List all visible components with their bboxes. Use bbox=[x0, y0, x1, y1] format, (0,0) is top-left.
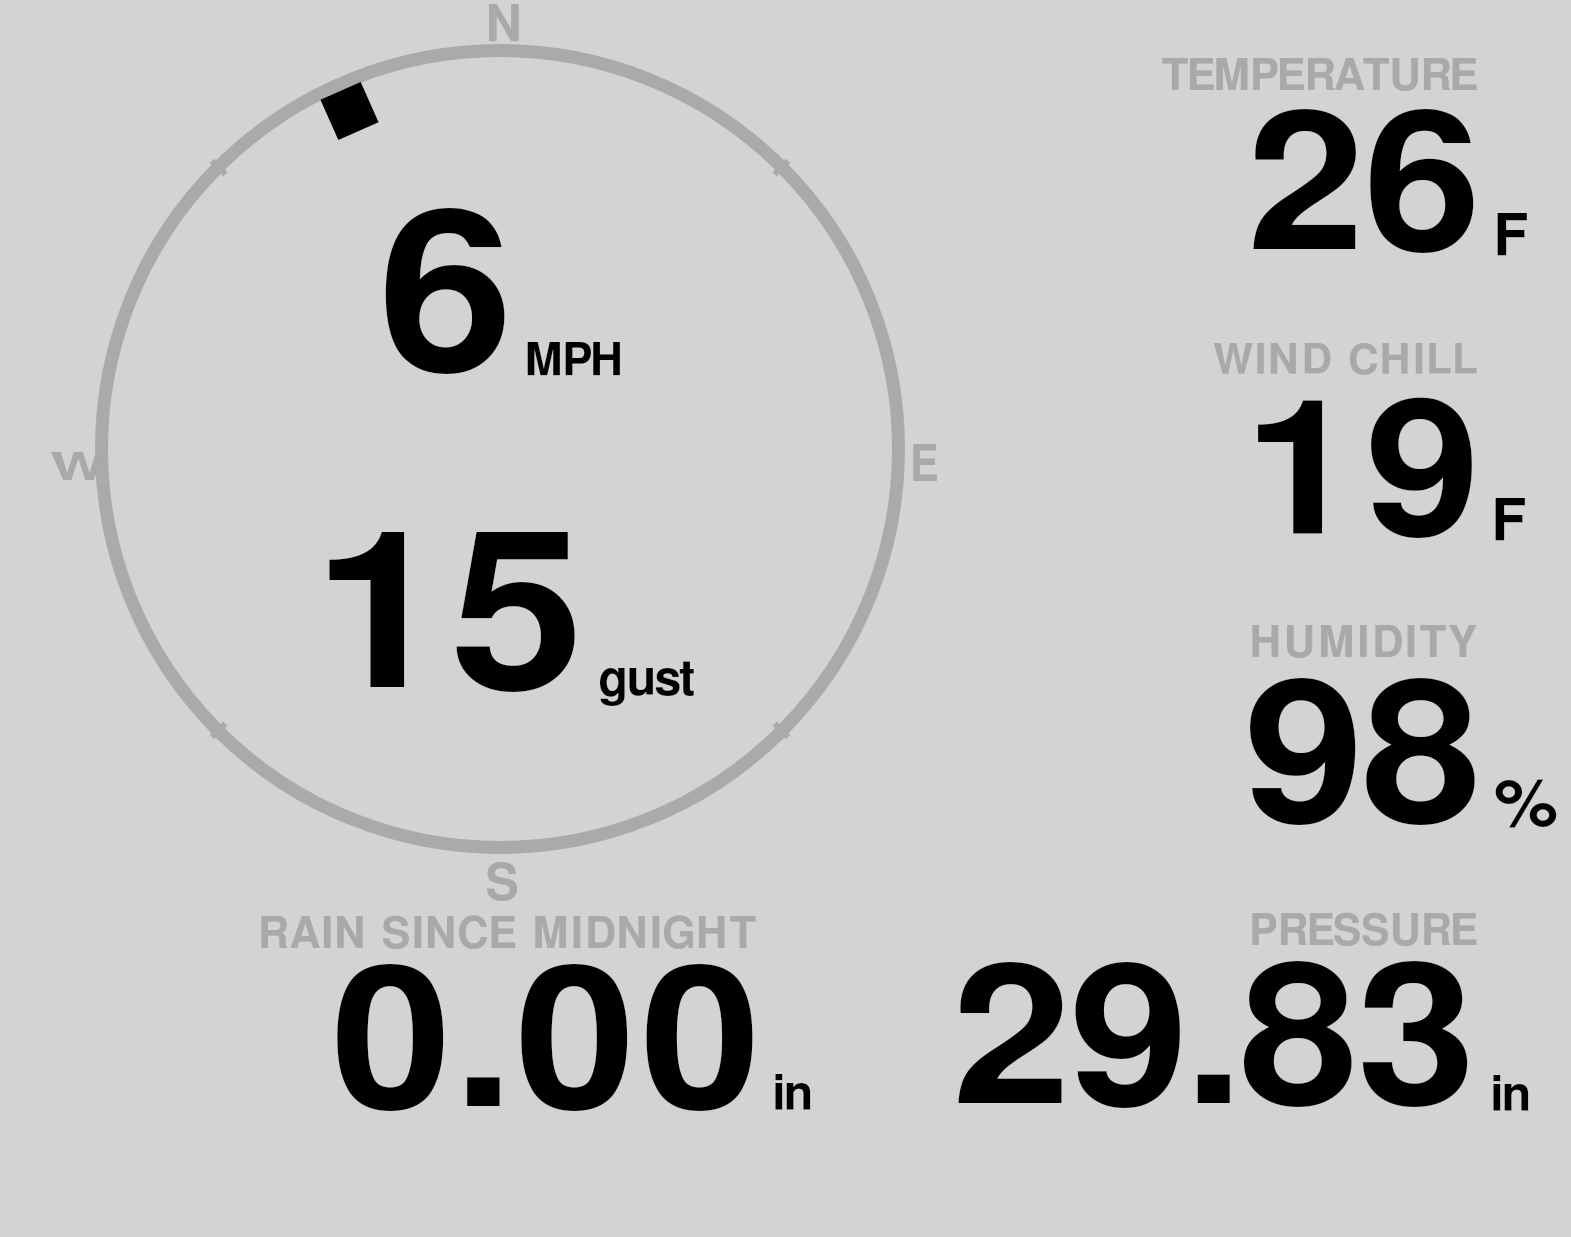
staticText: F bbox=[1491, 495, 1528, 552]
staticText: MPH bbox=[524, 339, 623, 385]
staticText: E bbox=[910, 441, 939, 491]
button[interactable]: Barometric pressure 29.83 inches bbox=[900, 895, 1571, 1125]
staticText: WIND CHILL bbox=[1213, 340, 1481, 382]
staticText: HUMIDITY bbox=[1249, 622, 1479, 666]
staticText: N bbox=[485, 1, 523, 51]
staticText: 19 bbox=[1244, 384, 1487, 572]
staticText: % bbox=[1494, 773, 1559, 838]
button[interactable]: Wind direction compass, north-north-west bbox=[88, 0, 920, 905]
staticText: 0.00 bbox=[331, 948, 765, 1145]
staticText: 6 bbox=[378, 192, 514, 413]
staticText: F bbox=[1493, 210, 1530, 267]
staticText: 15 bbox=[313, 512, 588, 731]
button[interactable]: Wind chill 19 degrees Fahrenheit bbox=[1100, 325, 1571, 555]
staticText: 26 bbox=[1247, 95, 1480, 287]
button[interactable]: Rain since midnight, 0.00 inches bbox=[220, 895, 860, 1125]
button[interactable]: Temperature 26 degrees Fahrenheit bbox=[1100, 40, 1571, 270]
staticText: RAIN SINCE MIDNIGHT bbox=[258, 914, 759, 957]
staticText: 98 bbox=[1244, 663, 1479, 859]
staticText: TEMPERATURE bbox=[1161, 55, 1478, 98]
staticText: in bbox=[1490, 1072, 1530, 1121]
button[interactable]: Humidity 98 percent bbox=[1100, 608, 1571, 838]
staticText: gust bbox=[598, 656, 694, 705]
staticText: S bbox=[485, 860, 520, 910]
staticText: in bbox=[772, 1071, 812, 1120]
staticText: PRESSURE bbox=[1249, 911, 1478, 954]
staticText: W bbox=[50, 450, 107, 487]
staticText: 29.83 bbox=[952, 947, 1474, 1142]
